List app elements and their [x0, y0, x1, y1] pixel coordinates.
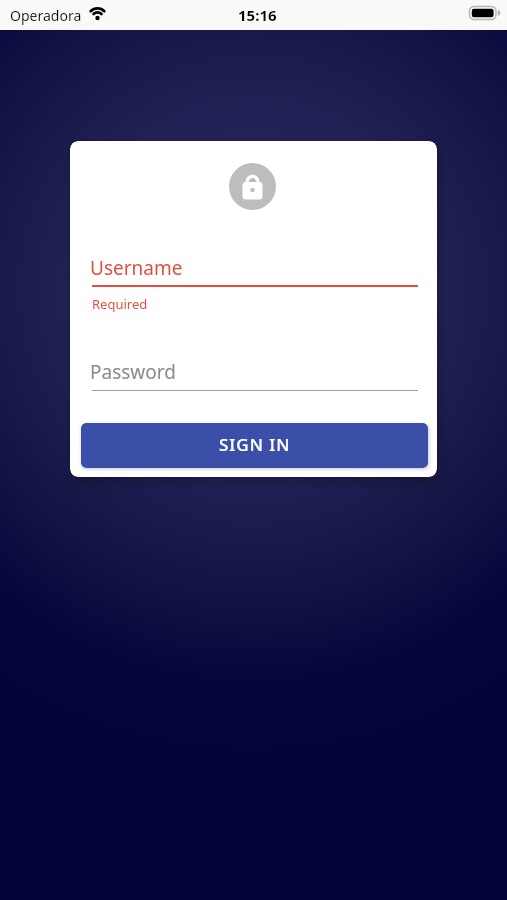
staticText: Required: [92, 295, 148, 313]
staticText: Password: [90, 359, 176, 385]
staticText: SIGN IN: [219, 433, 291, 456]
button[interactable]: [90, 249, 420, 289]
staticText: Username: [90, 255, 183, 281]
staticText: Operadora: [10, 6, 82, 25]
button[interactable]: SIGN IN: [81, 423, 428, 468]
button[interactable]: [90, 353, 420, 393]
button[interactable]: [229, 163, 276, 210]
staticText: 15:16: [238, 5, 277, 25]
